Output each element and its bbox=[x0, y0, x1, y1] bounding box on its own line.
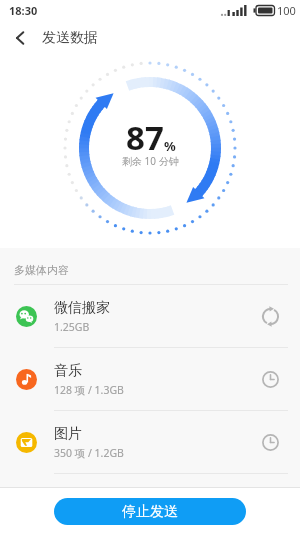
staticText: 100 bbox=[277, 3, 296, 18]
button[interactable]: 图片 bbox=[0, 411, 300, 473]
staticText: 多媒体内容 bbox=[14, 263, 69, 277]
staticText: 剩余 10 分钟 bbox=[122, 154, 179, 168]
staticText: 图片 bbox=[54, 425, 82, 443]
button[interactable]: 停止发送 bbox=[54, 498, 246, 525]
button[interactable]: 音乐 bbox=[0, 348, 300, 410]
staticText: % bbox=[164, 137, 176, 155]
button[interactable]: 微信搬家 bbox=[0, 285, 300, 347]
staticText: 128 项 / 1.3GB bbox=[54, 383, 124, 397]
staticText: 停止发送 bbox=[122, 503, 178, 521]
staticText: 350 项 / 1.2GB bbox=[54, 446, 124, 460]
staticText: 微信搬家 bbox=[54, 299, 110, 317]
staticText: 音乐 bbox=[54, 362, 82, 380]
staticText: 18:30 bbox=[9, 3, 38, 18]
staticText: 87 bbox=[126, 115, 164, 160]
staticText: 发送数据 bbox=[42, 29, 98, 47]
staticText: 1.25GB bbox=[54, 320, 90, 334]
button[interactable] bbox=[0, 20, 40, 56]
